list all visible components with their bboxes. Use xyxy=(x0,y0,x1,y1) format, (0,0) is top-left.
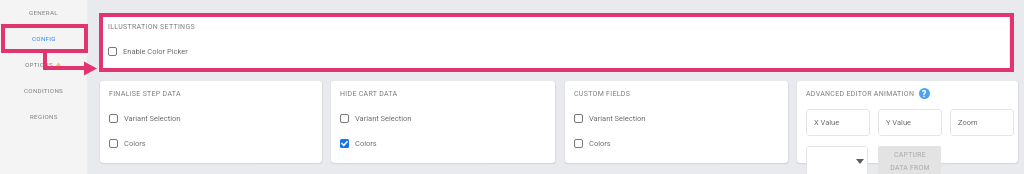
button[interactable]: Select source xyxy=(806,146,868,174)
button[interactable]: X Value xyxy=(806,109,870,136)
staticText: Variant Selection xyxy=(355,114,412,123)
button[interactable]: GENERAL xyxy=(0,4,87,21)
button[interactable] xyxy=(565,81,788,163)
button[interactable]: Y Value xyxy=(878,109,942,136)
button[interactable]: Colors xyxy=(340,137,377,149)
staticText: Y Value xyxy=(886,118,911,127)
staticText: FINALISE STEP DATA xyxy=(109,90,181,98)
button[interactable] xyxy=(331,81,555,163)
button[interactable]: Enable Color Picker xyxy=(108,45,188,57)
button[interactable]: CONFIG xyxy=(0,30,87,47)
button[interactable]: REGIONS xyxy=(0,108,87,125)
staticText: REGIONS xyxy=(30,113,58,120)
button[interactable]: Variant Selection xyxy=(340,112,412,124)
staticText: ILLUSTRATION SETTINGS xyxy=(108,23,195,31)
staticText: HIDE CART DATA xyxy=(340,90,398,98)
staticText: OPTIONS xyxy=(25,61,53,68)
staticText: Colors xyxy=(355,139,377,148)
staticText: Colors xyxy=(124,139,146,148)
button[interactable]: OPTIONS xyxy=(0,56,87,73)
staticText: CONFIG xyxy=(32,35,56,42)
staticText: Colors xyxy=(589,139,611,148)
staticText: CONDITIONS xyxy=(24,87,64,94)
button[interactable]: Variant Selection xyxy=(574,112,646,124)
button[interactable]: Help xyxy=(919,88,930,99)
button[interactable]: CONDITIONS xyxy=(0,82,87,99)
button[interactable]: Colors xyxy=(109,137,146,149)
staticText: X Value xyxy=(814,118,840,127)
staticText: Variant Selection xyxy=(589,114,646,123)
button[interactable]: Zoom xyxy=(950,109,1014,136)
staticText: ADVANCED EDITOR ANIMATION xyxy=(806,90,915,98)
staticText: Enable Color Picker xyxy=(123,47,188,56)
button[interactable]: CAPTURE DATA FROM xyxy=(878,146,941,174)
staticText: CAPTURE DATA FROM xyxy=(890,151,930,172)
button[interactable]: Variant Selection xyxy=(109,112,181,124)
staticText: Zoom xyxy=(958,118,978,127)
button[interactable]: Colors xyxy=(574,137,611,149)
staticText: ? xyxy=(922,89,927,99)
staticText: GENERAL xyxy=(29,9,58,16)
staticText: CUSTOM FIELDS xyxy=(574,90,631,98)
button[interactable] xyxy=(100,81,322,163)
staticText: Variant Selection xyxy=(124,114,181,123)
